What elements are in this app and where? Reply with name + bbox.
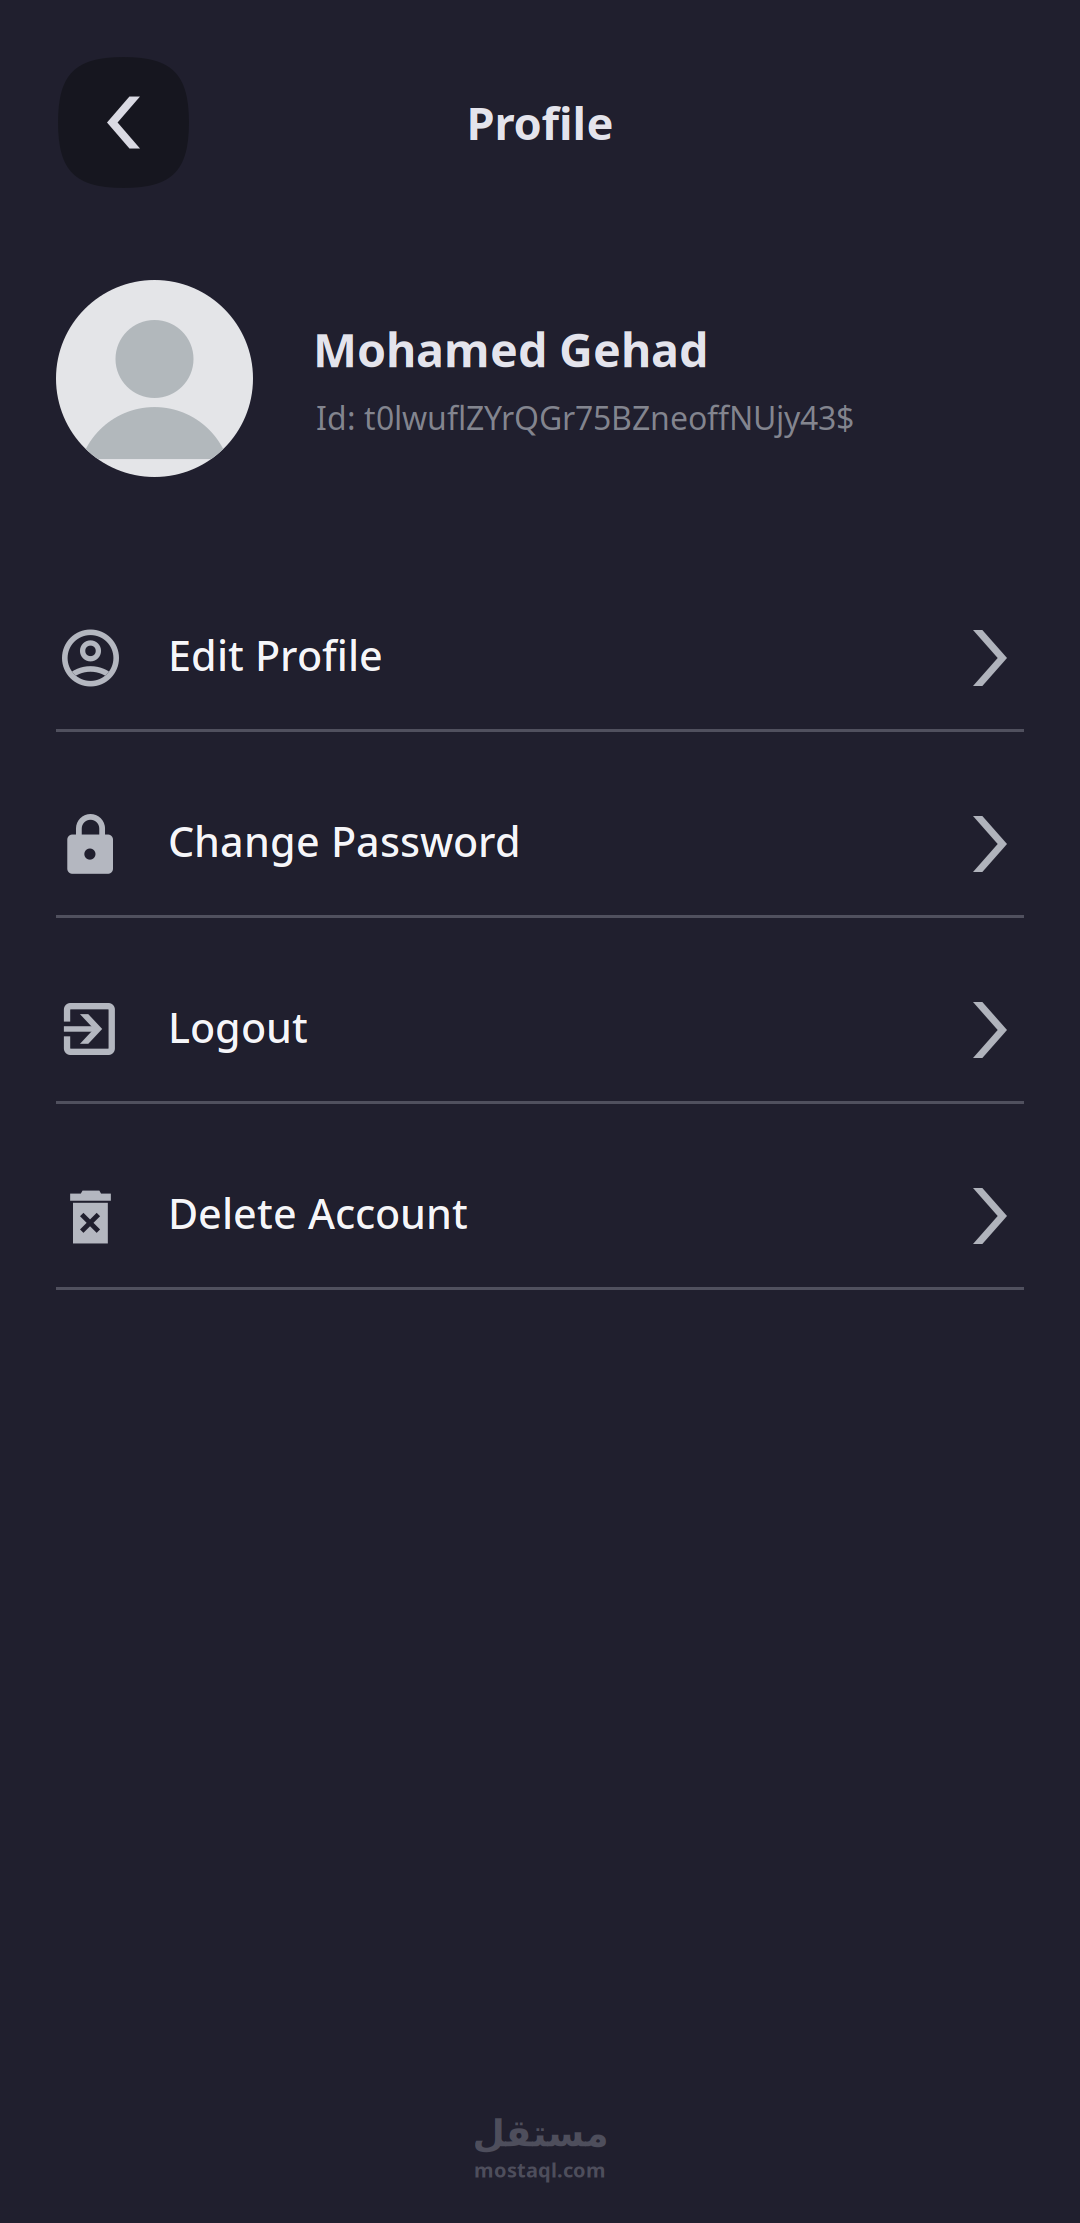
button[interactable]: Change Password	[56, 773, 1024, 918]
staticText: mostaql.com	[474, 2156, 606, 2183]
staticText: Logout	[168, 1000, 308, 1054]
staticText: Delete Account	[168, 1186, 468, 1240]
button[interactable]: Logout	[56, 959, 1024, 1104]
staticText: Profile	[466, 92, 613, 153]
staticText: مستقل	[472, 2112, 608, 2154]
button[interactable]: Edit Profile	[56, 587, 1024, 732]
staticText: Mohamed Gehad	[313, 318, 708, 380]
staticText: Edit Profile	[168, 628, 383, 682]
staticText: Change Password	[168, 814, 521, 868]
button[interactable]: Back	[58, 57, 189, 188]
button[interactable]: Delete Account	[56, 1145, 1024, 1290]
staticText: Id: t0lwuflZYrQGr75BZneoffNUjy43$	[316, 396, 854, 439]
